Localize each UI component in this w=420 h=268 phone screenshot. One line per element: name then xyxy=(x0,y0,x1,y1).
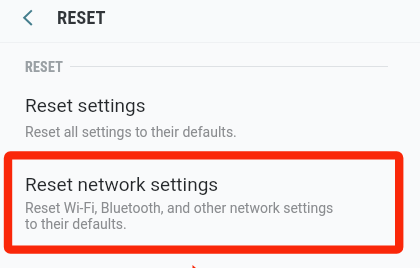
staticText: Reset settings xyxy=(25,94,146,116)
button[interactable]: Reset settings xyxy=(0,90,420,140)
button[interactable]: Navigate up xyxy=(0,0,50,42)
staticText: Reset all settings to their defaults. xyxy=(25,124,237,140)
staticText: RESET xyxy=(25,59,64,75)
staticText: RESET xyxy=(57,7,106,29)
staticText: Reset Wi-Fi, Bluetooth, and other networ… xyxy=(25,200,334,232)
button[interactable]: Reset network settings xyxy=(0,169,420,235)
staticText: Reset network settings xyxy=(25,173,219,195)
